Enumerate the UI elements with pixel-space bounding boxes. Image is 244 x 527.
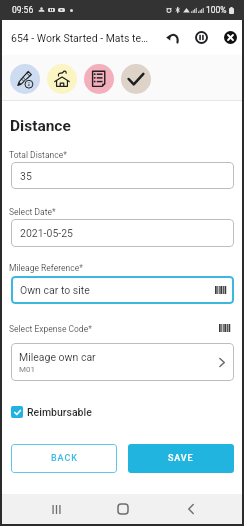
staticText: Select Date*	[9, 207, 56, 217]
staticText: Mileage own car	[19, 351, 96, 363]
staticText: Select Expense Code*	[9, 324, 92, 334]
button[interactable]: BACK	[11, 444, 117, 473]
button[interactable]: Home	[109, 495, 137, 523]
button[interactable]: Undo	[161, 26, 184, 49]
button[interactable]: Site	[47, 64, 77, 94]
button[interactable]: Edit details	[10, 64, 40, 94]
staticText: Own car to site	[20, 284, 90, 296]
button[interactable]: 35	[11, 162, 234, 189]
button[interactable]: Recents	[42, 495, 70, 523]
staticText: Reimbursable	[27, 406, 92, 418]
button[interactable]: Back	[177, 495, 205, 523]
button[interactable]: SAVE	[128, 444, 234, 473]
staticText: Total Distance*	[9, 150, 67, 160]
staticText: M01	[19, 365, 35, 374]
button[interactable]: Close	[219, 26, 242, 49]
button[interactable]: Pause	[190, 26, 213, 49]
staticText: 100%	[206, 5, 227, 15]
staticText: SAVE	[168, 453, 194, 464]
staticText: BACK	[51, 453, 78, 464]
staticText: 2021-05-25	[20, 227, 74, 239]
staticText: Mileage Reference*	[9, 263, 83, 273]
button[interactable]: Complete	[121, 64, 151, 94]
staticText: 35	[20, 170, 32, 182]
staticText: 654 - Work Started - Mats testi…	[11, 32, 152, 44]
button[interactable]: 2021-05-25	[11, 219, 234, 247]
button[interactable]: Mileage own car	[11, 343, 234, 381]
staticText: Distance	[10, 117, 71, 135]
button[interactable]: Own car to site	[11, 276, 234, 304]
button[interactable]: Reimbursable	[11, 403, 92, 420]
staticText: 09:56	[12, 5, 34, 15]
button[interactable]: Report	[84, 64, 114, 94]
